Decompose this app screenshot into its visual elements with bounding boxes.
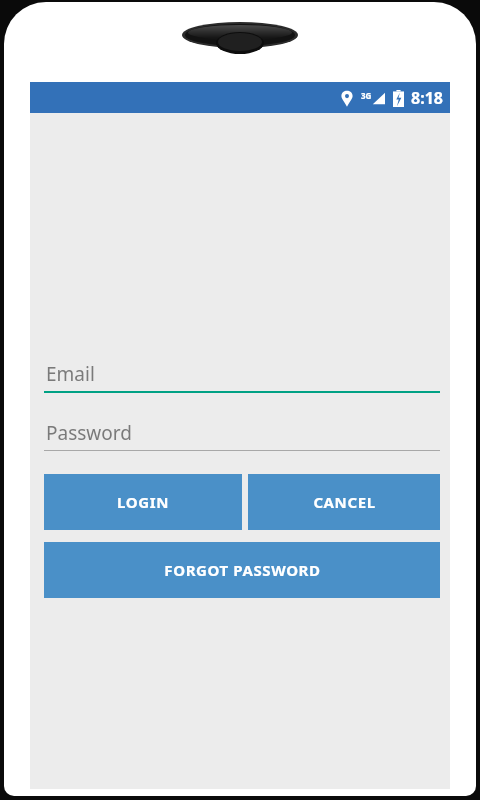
staticText: 8:18	[411, 87, 443, 109]
button[interactable]: CANCEL	[248, 474, 440, 530]
staticText: LOGIN	[117, 492, 169, 512]
button[interactable]: LOGIN	[44, 474, 242, 530]
staticText: 3G	[361, 90, 372, 101]
staticText: Password	[46, 420, 132, 446]
button[interactable]: FORGOT PASSWORD	[44, 542, 440, 598]
staticText: Email	[46, 361, 95, 387]
button[interactable]: Password	[44, 419, 440, 451]
button[interactable]: Email	[44, 360, 440, 393]
staticText: CANCEL	[313, 492, 376, 512]
staticText: FORGOT PASSWORD	[164, 560, 321, 580]
